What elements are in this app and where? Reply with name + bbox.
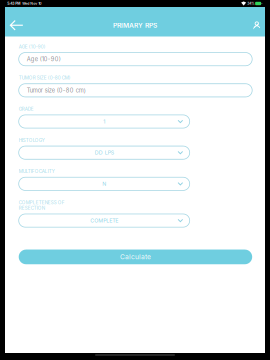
button[interactable]: Tumor size (0-80 cm) — [19, 84, 252, 97]
staticText: 5:43 PM — [7, 1, 20, 6]
button[interactable]: Account — [252, 15, 262, 35]
staticText: Wed Nov 10 — [20, 1, 41, 6]
staticText: N — [102, 181, 106, 187]
staticText: AGE (10-90) — [19, 44, 46, 50]
staticText: Age (10-90) — [27, 56, 61, 63]
staticText: Tumor size (0-80 cm) — [27, 87, 86, 94]
button[interactable]: N — [19, 177, 190, 190]
staticText: COMPLETE — [90, 217, 118, 224]
staticText: HISTOLOGY — [19, 137, 45, 143]
staticText: DD LPS — [95, 149, 114, 156]
staticText: COMPLETENESS OF RESECTION — [19, 200, 65, 211]
button[interactable]: 1 — [19, 115, 190, 128]
button[interactable]: Back — [7, 15, 27, 35]
staticText: MULTIFOCALITY — [19, 169, 55, 174]
staticText: Calculate — [120, 253, 151, 261]
staticText: PRIMARY RPS — [113, 21, 157, 29]
staticText: 34% — [246, 1, 255, 6]
button[interactable]: Age (10-90) — [19, 53, 252, 66]
staticText: 1 — [103, 118, 105, 125]
button[interactable]: DD LPS — [19, 146, 190, 159]
staticText: GRADE — [19, 106, 34, 112]
button[interactable]: COMPLETE — [19, 214, 190, 227]
staticText: TUMOR SIZE (0-80 CM) — [19, 75, 71, 81]
button[interactable]: Calculate — [19, 250, 252, 264]
